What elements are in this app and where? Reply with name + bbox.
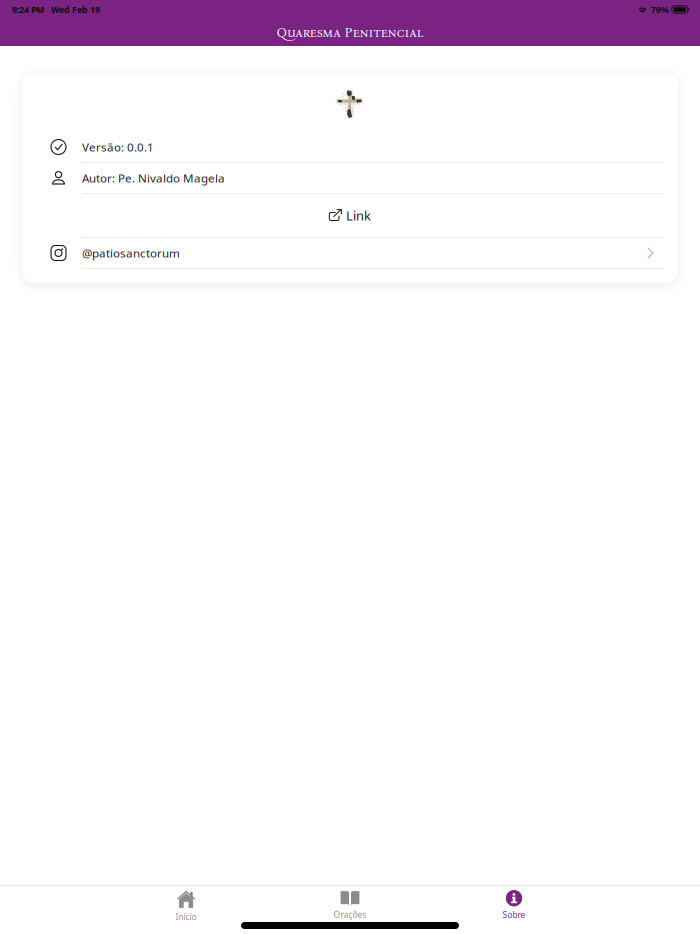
staticText: 9:24 PM: [12, 3, 44, 15]
staticText: Início: [175, 911, 196, 922]
staticText: @patiosanctorum: [82, 245, 180, 261]
button[interactable]: Link: [22, 194, 678, 237]
staticText: Orações: [333, 909, 366, 920]
button[interactable]: Orações: [268, 890, 432, 918]
staticText: Quaresma Penitencial: [276, 24, 423, 40]
button[interactable]: Sobre: [432, 890, 596, 918]
staticText: Link: [346, 207, 371, 224]
staticText: Wed Feb 19: [51, 3, 100, 15]
staticText: Autor: Pe. Nivaldo Magela: [82, 170, 225, 186]
button[interactable]: Início: [104, 890, 268, 918]
staticText: Versão: 0.0.1: [82, 139, 154, 155]
button[interactable]: @patiosanctorum: [22, 238, 678, 268]
staticText: Sobre: [502, 909, 525, 920]
staticText: 79%: [651, 3, 669, 15]
